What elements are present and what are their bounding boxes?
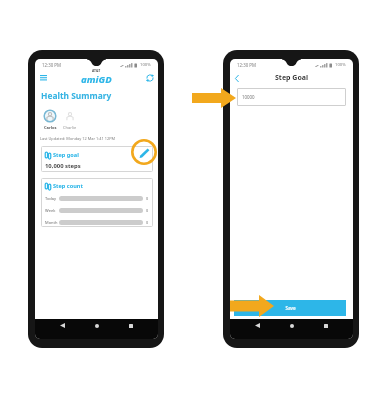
button[interactable]: Recents — [319, 319, 332, 332]
staticText: 0 — [146, 208, 149, 213]
staticText: 12:30 PM — [237, 62, 257, 68]
button[interactable]: Refresh — [145, 73, 155, 83]
staticText: amiGD — [81, 73, 112, 85]
staticText: Health Summary — [41, 90, 112, 101]
button[interactable]: Charlie — [63, 109, 77, 130]
staticText: 0 — [146, 220, 149, 225]
staticText: Charlie — [63, 125, 77, 130]
staticText: AT&T — [92, 68, 101, 73]
staticText: 100% — [335, 62, 346, 68]
staticText: Last Updated: Monday 12 Mar 1:41 12PM — [40, 136, 116, 141]
button[interactable]: Edit step goal — [131, 139, 157, 165]
button[interactable]: Carlos — [43, 109, 57, 130]
button[interactable]: 10000 — [237, 88, 346, 106]
staticText: 0 — [146, 196, 149, 201]
button[interactable]: Recents — [124, 319, 137, 332]
button[interactable]: Menu — [38, 72, 48, 82]
staticText: Save — [285, 305, 296, 311]
staticText: 100% — [140, 62, 151, 68]
staticText: Step goal — [53, 151, 79, 159]
button[interactable]: Back — [232, 73, 242, 83]
staticText: 10000 — [242, 94, 255, 100]
staticText: Carlos — [44, 125, 57, 130]
staticText: Week — [45, 208, 59, 213]
staticText: Month — [45, 220, 59, 225]
staticText: 12:30 PM — [42, 62, 62, 68]
button[interactable]: Step goal — [41, 146, 153, 172]
button[interactable]: Home — [285, 319, 298, 332]
button[interactable]: Back — [56, 319, 69, 332]
button[interactable]: Save — [234, 300, 346, 316]
button[interactable]: Home — [90, 319, 103, 332]
staticText: Step Goal — [275, 73, 309, 83]
staticText: Today — [45, 196, 59, 201]
button[interactable]: Back — [251, 319, 264, 332]
staticText: Step count — [53, 182, 83, 190]
staticText: 10,000 steps — [45, 162, 81, 170]
